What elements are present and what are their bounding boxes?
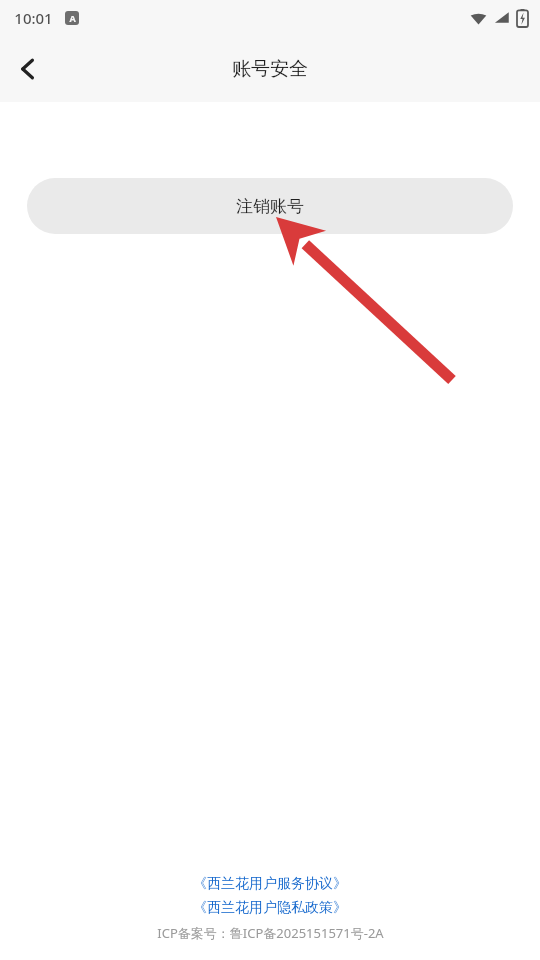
button[interactable]: 《西兰花用户服务协议》 (181, 872, 359, 896)
staticText: 《西兰花用户服务协议》 (193, 875, 347, 893)
button[interactable]: 注销账号 (27, 178, 513, 234)
staticText: A (69, 12, 76, 24)
staticText: ICP备案号：鲁ICP备2025151571号-2A (157, 924, 384, 942)
staticText: 注销账号 (236, 196, 304, 217)
staticText: 《西兰花用户隐私政策》 (193, 899, 347, 917)
staticText: 10:01 (14, 8, 53, 28)
button[interactable]: 《西兰花用户隐私政策》 (181, 896, 359, 920)
button[interactable]: Back (0, 41, 56, 97)
staticText: 账号安全 (232, 57, 308, 81)
